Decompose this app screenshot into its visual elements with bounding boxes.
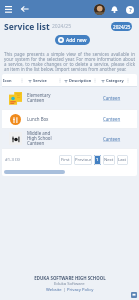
staticText: First [61, 157, 70, 163]
button[interactable]: Help [124, 4, 135, 15]
button[interactable]: Previous [74, 155, 92, 165]
staticText: 1 [96, 157, 99, 163]
staticText: Eduka Software [54, 281, 85, 287]
button[interactable]: Middle and High School Canteen [2, 129, 137, 148]
staticText: EDUKA SOFTWARE HIGH SCHOOL [34, 275, 106, 281]
button[interactable]: Service [28, 75, 59, 86]
staticText: Description [69, 78, 92, 83]
button[interactable]: 2024/25 [111, 22, 132, 31]
button[interactable]: Menu [1, 2, 15, 16]
staticText: Last [118, 157, 127, 163]
staticText: Previous [75, 157, 92, 163]
button[interactable]: Lunch Box [2, 110, 137, 128]
staticText: ? [129, 6, 132, 14]
staticText: | [62, 287, 67, 293]
staticText: Category [106, 78, 124, 83]
staticText: Middle and High School Canteen [27, 130, 52, 147]
staticText: Add new [66, 37, 87, 44]
button[interactable]: Category [101, 75, 127, 86]
staticText: This page presents a simple view of the … [4, 51, 135, 72]
staticText: 2024/25 [113, 24, 131, 30]
staticText: Service list [4, 21, 50, 32]
button[interactable]: Notifications [109, 4, 120, 15]
staticText: Canteen [103, 116, 121, 122]
staticText: Elementary Canteen [27, 92, 51, 104]
staticText: Canteen [103, 95, 121, 101]
button[interactable]: Help chat [131, 292, 137, 298]
button[interactable]: Elementary Canteen [2, 87, 137, 109]
staticText: Icon [3, 78, 12, 83]
button[interactable]: Icon [3, 75, 21, 86]
button[interactable]: Profile [94, 4, 105, 15]
button[interactable]: Back [18, 2, 32, 16]
staticText: Service [33, 78, 47, 83]
staticText: Privacy Policy [67, 287, 94, 293]
staticText: 2024/25 [52, 23, 72, 30]
button[interactable]: 1 [94, 155, 101, 165]
staticText: Next [104, 157, 114, 163]
button[interactable]: Description [64, 75, 94, 86]
button[interactable]: Add new [55, 35, 90, 45]
button[interactable]: Last [117, 155, 128, 165]
button[interactable]: Next [103, 155, 115, 165]
staticText: Website [46, 287, 62, 293]
staticText: Lunch Box [27, 116, 49, 122]
button[interactable]: First [59, 155, 72, 165]
staticText: #1-3 (3) [5, 157, 20, 163]
staticText: Canteen [103, 136, 121, 142]
